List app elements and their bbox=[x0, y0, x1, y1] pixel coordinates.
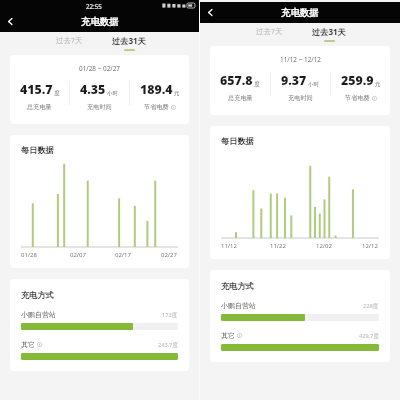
staticText: 小鹏自营站 bbox=[21, 310, 56, 319]
staticText: 9.37 bbox=[281, 72, 307, 89]
staticText: 充电方式 bbox=[221, 281, 254, 291]
staticText: 11/22 bbox=[270, 242, 286, 250]
staticText: 每日数据 bbox=[221, 136, 254, 146]
staticText: 01/28 ~ 02/27 bbox=[79, 64, 120, 73]
staticText: 657.8 bbox=[220, 72, 253, 89]
staticText: 度 bbox=[254, 81, 260, 88]
staticText: 429.7度 bbox=[359, 332, 379, 340]
staticText: 02/17 bbox=[115, 251, 131, 259]
button[interactable]: 11/12 ~ 12/12 bbox=[210, 46, 390, 115]
staticText: 过去7天 bbox=[256, 26, 283, 36]
staticText: 415.7 bbox=[20, 81, 53, 98]
staticText: 过去31天 bbox=[112, 35, 146, 46]
staticText: 其它 bbox=[221, 331, 235, 340]
button[interactable]: 01/28 ~ 02/27 bbox=[10, 55, 189, 124]
staticText: 总充电量 bbox=[228, 94, 253, 102]
staticText: 小时 bbox=[107, 90, 119, 97]
button[interactable]: 每日数据 bbox=[10, 135, 189, 268]
staticText: 过去31天 bbox=[312, 26, 346, 37]
button[interactable]: 充电方式 bbox=[210, 270, 390, 362]
staticText: 4.35 bbox=[80, 81, 106, 98]
staticText: 12/12 bbox=[362, 242, 378, 250]
button[interactable]: 充电方式 bbox=[10, 279, 189, 371]
staticText: 01/28 bbox=[21, 251, 37, 259]
button[interactable]: Back bbox=[0, 11, 21, 32]
staticText: 22:55 bbox=[86, 2, 102, 10]
button[interactable]: 过去7天 bbox=[249, 26, 289, 43]
button[interactable]: 每日数据 bbox=[210, 126, 390, 259]
staticText: 度 bbox=[54, 90, 60, 97]
staticText: 小时 bbox=[308, 81, 320, 88]
staticText: 节省电费 bbox=[345, 94, 370, 102]
staticText: 243.7度 bbox=[158, 341, 178, 349]
staticText: 充电数据 bbox=[81, 16, 119, 28]
staticText: 172度 bbox=[162, 311, 178, 319]
staticText: 充电方式 bbox=[21, 290, 54, 300]
staticText: 节省电费 bbox=[144, 103, 169, 111]
staticText: 228度 bbox=[363, 302, 379, 310]
staticText: 02/27 bbox=[161, 251, 177, 259]
staticText: 11/12 bbox=[221, 242, 237, 250]
staticText: 每日数据 bbox=[21, 145, 54, 155]
staticText: 11/12 ~ 12/12 bbox=[280, 55, 321, 64]
staticText: 充电数据 bbox=[281, 7, 319, 19]
staticText: 元 bbox=[375, 81, 381, 88]
button[interactable]: 过去31天 bbox=[107, 35, 151, 52]
staticText: 总充电量 bbox=[27, 103, 52, 111]
staticText: 其它 bbox=[21, 340, 35, 349]
button[interactable]: Back bbox=[200, 2, 221, 23]
staticText: 充电时间 bbox=[288, 94, 313, 102]
staticText: 189.4 bbox=[140, 81, 173, 98]
staticText: 过去7天 bbox=[56, 35, 83, 45]
staticText: 259.9 bbox=[341, 72, 374, 89]
staticText: 小鹏自营站 bbox=[221, 301, 256, 310]
staticText: 12/02 bbox=[316, 242, 332, 250]
staticText: 02/07 bbox=[70, 251, 86, 259]
button[interactable]: 过去7天 bbox=[49, 35, 89, 52]
button[interactable]: 过去31天 bbox=[307, 26, 351, 43]
staticText: 元 bbox=[174, 90, 180, 97]
staticText: 充电时间 bbox=[87, 103, 112, 111]
